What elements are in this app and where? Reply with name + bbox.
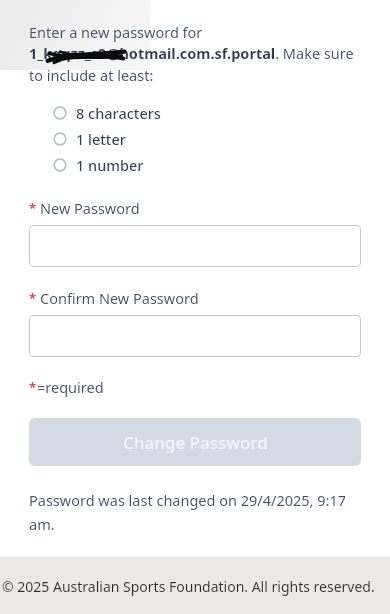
staticText: Password was last changed on 29/4/2025, …	[29, 490, 361, 534]
staticText: © 2025 Australian Sports Foundation. All…	[2, 577, 375, 596]
staticText: 1 number	[76, 155, 144, 175]
button[interactable]: 1 number	[29, 152, 361, 178]
staticText: Enter a new password for 1_kqqzz_s9@hotm…	[29, 22, 361, 86]
staticText: *	[29, 378, 37, 396]
staticText: =required	[37, 377, 104, 397]
staticText: 8 characters	[76, 103, 161, 123]
staticText: New Password	[40, 198, 140, 218]
button[interactable]: Change Password	[29, 418, 361, 466]
button[interactable]: 1 letter	[29, 126, 361, 152]
button[interactable]	[29, 315, 361, 357]
staticText: 1 letter	[76, 129, 126, 149]
button[interactable]: 8 characters	[29, 100, 361, 126]
button[interactable]	[29, 225, 361, 267]
staticText: *	[29, 289, 37, 307]
staticText: Confirm New Password	[40, 288, 199, 308]
other: Redacted email	[46, 45, 126, 67]
staticText: *	[29, 199, 37, 217]
staticText: Change Password	[123, 431, 268, 454]
